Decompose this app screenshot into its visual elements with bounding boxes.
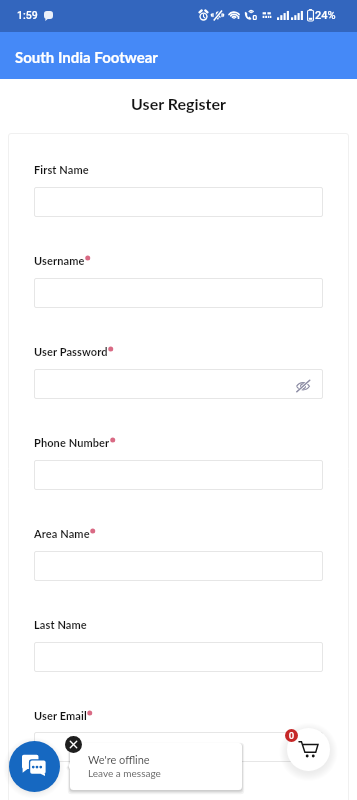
staticText: User Email	[34, 709, 87, 722]
staticText: User Register	[0, 94, 357, 113]
staticText: User Password	[34, 345, 108, 358]
button[interactable]: Toggle password visibility	[296, 380, 310, 392]
staticText: First Name	[34, 163, 89, 176]
staticText: Area Name	[34, 527, 90, 540]
staticText: Username	[34, 254, 85, 267]
staticText: Last Name	[34, 618, 87, 631]
button[interactable]: Shopping cart	[287, 728, 330, 771]
button[interactable]	[34, 278, 323, 308]
staticText: We're offline	[88, 753, 150, 766]
staticText: 1:59	[17, 9, 38, 21]
button[interactable]	[34, 460, 323, 490]
button[interactable]: We're offline	[88, 753, 161, 779]
button[interactable]	[60, 738, 250, 798]
button[interactable]	[34, 187, 323, 217]
staticText: Leave a message	[88, 767, 161, 779]
staticText: 0	[289, 731, 294, 741]
button[interactable]	[34, 642, 323, 672]
staticText: 24%	[315, 9, 336, 22]
button[interactable]	[34, 551, 323, 581]
button[interactable]	[34, 732, 323, 762]
button[interactable]: Close chat	[65, 736, 82, 753]
staticText: South India Footwear	[15, 48, 158, 66]
staticText: Phone Number	[34, 436, 110, 449]
button[interactable]: South India Footwear	[0, 32, 357, 79]
button[interactable]: Chat	[9, 741, 60, 792]
button[interactable]: Toggle password visibility	[34, 369, 323, 399]
